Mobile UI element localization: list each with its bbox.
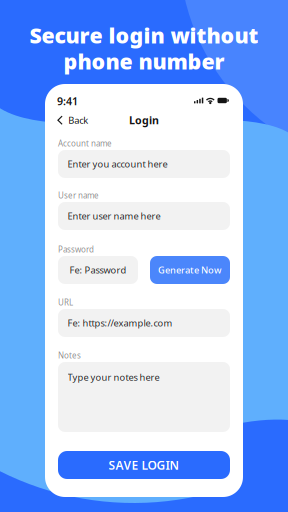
staticText: Enter you account here xyxy=(67,158,167,170)
staticText: Login xyxy=(129,113,159,127)
staticText: phone number xyxy=(63,47,224,75)
staticText: Fe: Password xyxy=(69,264,126,276)
staticText: URL xyxy=(58,297,73,308)
staticText: Notes xyxy=(58,350,81,361)
staticText: SAVE LOGIN xyxy=(108,457,179,473)
staticText: Back xyxy=(68,114,88,126)
staticText: Fe: https://example.com xyxy=(67,317,172,329)
button[interactable]: Back xyxy=(56,110,93,130)
staticText: Generate Now xyxy=(158,264,222,276)
staticText: 9:41 xyxy=(57,94,78,108)
staticText: Enter user name here xyxy=(67,210,160,222)
staticText: Secure login without xyxy=(29,21,258,49)
staticText: User name xyxy=(58,190,99,201)
staticText: Account name xyxy=(58,138,112,149)
button[interactable]: Generate Now xyxy=(150,256,230,284)
button[interactable]: SAVE LOGIN xyxy=(58,451,230,479)
staticText: Password xyxy=(58,244,94,255)
staticText: Type your notes here xyxy=(67,371,159,383)
